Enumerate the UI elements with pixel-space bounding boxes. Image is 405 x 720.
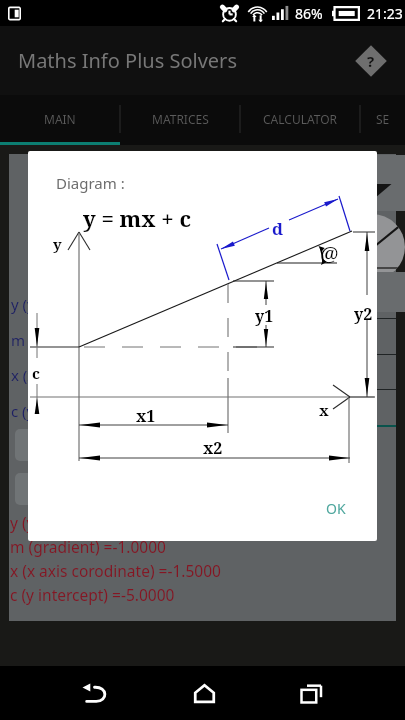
staticText: y (y axis cordinate) =: [11, 294, 154, 314]
staticText: y: [53, 234, 62, 254]
staticText: y = mx + c: [83, 203, 191, 233]
button[interactable]: Help: [349, 39, 393, 83]
staticText: x2: [203, 437, 223, 459]
staticText: 21:23: [367, 4, 403, 23]
button[interactable]: [15, 473, 137, 505]
button[interactable]: [15, 429, 137, 461]
staticText: c (y intercept) =-5.0000: [10, 584, 175, 605]
staticText: Maths Info Plus Solvers: [18, 47, 237, 74]
staticText: y1: [255, 305, 274, 327]
staticText: y (y axis cordinate) =-1.5000: [10, 512, 211, 533]
other: Multi window: [5, 4, 24, 23]
staticText: CALCULATOR: [263, 111, 338, 127]
staticText: x: [319, 400, 329, 420]
staticText: d: [272, 217, 284, 240]
staticText: ?: [367, 51, 375, 71]
staticText: SE: [376, 111, 390, 127]
button[interactable]: OK: [306, 491, 366, 525]
staticText: MATRICES: [152, 111, 209, 127]
staticText: c: [32, 363, 40, 383]
staticText: OK: [326, 499, 346, 518]
button[interactable]: MATRICES: [120, 95, 240, 145]
staticText: m (gradient) =-1.0000: [10, 536, 166, 557]
button[interactable]: Home: [179, 666, 229, 720]
button[interactable]: [375, 272, 405, 312]
button[interactable]: SE: [360, 95, 405, 145]
button[interactable]: Back: [70, 666, 120, 720]
staticText: x1: [136, 405, 156, 427]
staticText: x (x axis cordinate) =: [11, 365, 155, 385]
staticText: @: [320, 240, 339, 267]
staticText: c (y intercept) =: [11, 401, 119, 421]
staticText: 86%: [295, 4, 323, 23]
button[interactable]: CALCULATOR: [240, 95, 360, 145]
staticText: m (gradient) =: [11, 330, 111, 350]
staticText: y2: [354, 303, 373, 325]
button[interactable]: Recent apps: [286, 666, 336, 720]
staticText: Diagram :: [56, 173, 125, 193]
button[interactable]: MAIN: [0, 95, 120, 145]
staticText: MAIN: [44, 111, 76, 127]
staticText: x (x axis corodinate) =-1.5000: [10, 560, 221, 581]
button[interactable]: [375, 155, 405, 211]
